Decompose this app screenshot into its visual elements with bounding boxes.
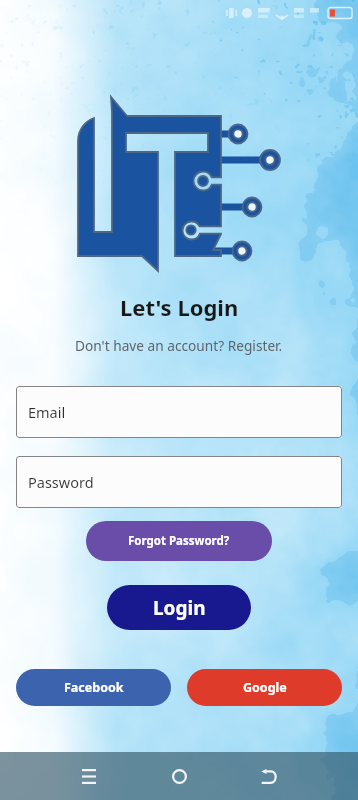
button[interactable]: Back <box>245 752 293 800</box>
button[interactable]: Home <box>155 752 203 800</box>
button[interactable]: Forgot Password? <box>86 521 272 561</box>
staticText: Google <box>243 679 287 696</box>
staticText: 8:55 AM <box>17 6 59 21</box>
staticText: Facebook <box>64 679 124 696</box>
button[interactable]: Email <box>16 386 342 438</box>
staticText: Don't have an account? Register. <box>75 336 283 355</box>
button[interactable]: Facebook <box>16 669 171 706</box>
staticText: Email <box>28 402 66 422</box>
staticText: Let's Login <box>120 292 239 322</box>
staticText: Password <box>28 472 94 492</box>
staticText: Forgot Password? <box>128 533 230 549</box>
button[interactable]: Login <box>107 585 251 630</box>
staticText: Login <box>153 595 206 621</box>
button[interactable]: Recent apps <box>65 752 113 800</box>
button[interactable]: Google <box>187 669 342 706</box>
button[interactable]: Password <box>16 456 342 508</box>
